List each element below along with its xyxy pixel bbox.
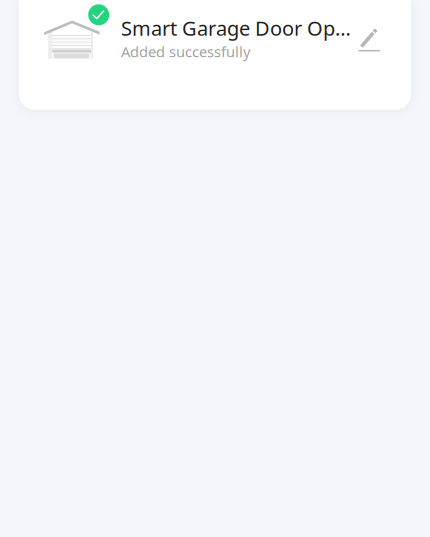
staticText: Added successfully [121, 42, 250, 61]
button[interactable]: Rename [350, 15, 394, 59]
staticText: Smart Garage Door Op… [121, 15, 351, 41]
